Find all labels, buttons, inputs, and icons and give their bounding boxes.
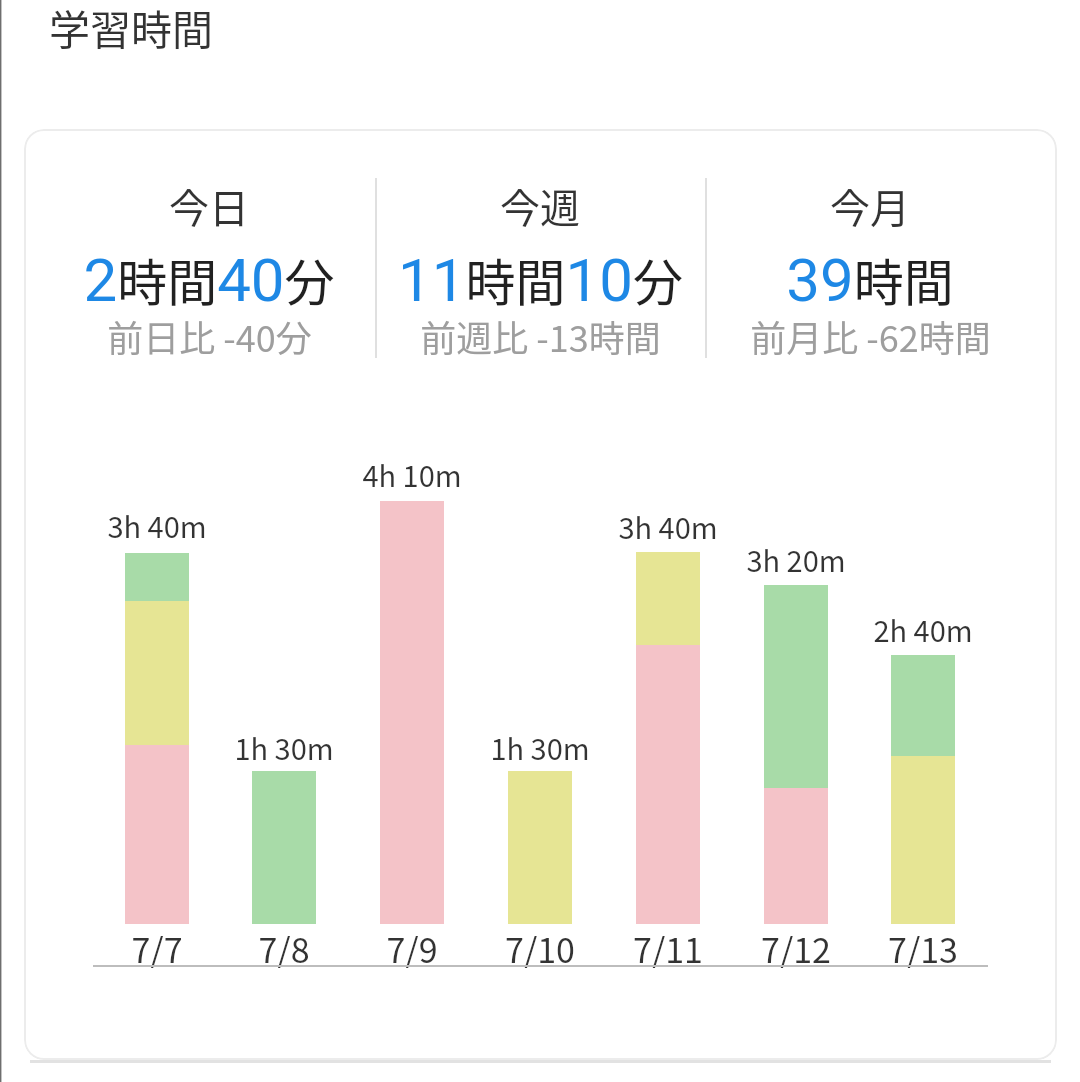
staticText: 学習時間 <box>49 0 213 56</box>
staticText: 11時間10分 <box>398 243 683 316</box>
staticText: 1h 30m <box>490 726 590 768</box>
staticText: 7/12 <box>761 924 831 968</box>
staticText: 前週比 -13時間 <box>420 310 661 360</box>
staticText: 7/13 <box>888 924 958 968</box>
staticText: 7/9 <box>386 924 438 968</box>
staticText: 3h 40m <box>618 505 718 547</box>
staticText: 今月 <box>830 177 910 235</box>
staticText: 1h 30m <box>234 726 334 768</box>
staticText: 7/11 <box>633 924 703 968</box>
staticText: 3h 20m <box>746 538 846 580</box>
button[interactable] <box>24 129 1057 1060</box>
staticText: 7/7 <box>131 924 183 968</box>
staticText: 2時間40分 <box>83 243 335 316</box>
staticText: 7/8 <box>258 924 310 968</box>
staticText: 前日比 -40分 <box>107 310 312 360</box>
staticText: 7/10 <box>505 924 575 968</box>
staticText: 2h 40m <box>873 608 973 650</box>
staticText: 39時間 <box>786 243 954 316</box>
staticText: 今週 <box>500 177 580 235</box>
staticText: 4h 10m <box>362 453 462 495</box>
staticText: 3h 40m <box>107 504 207 546</box>
staticText: 前月比 -62時間 <box>750 310 991 360</box>
staticText: 今日 <box>169 177 249 235</box>
